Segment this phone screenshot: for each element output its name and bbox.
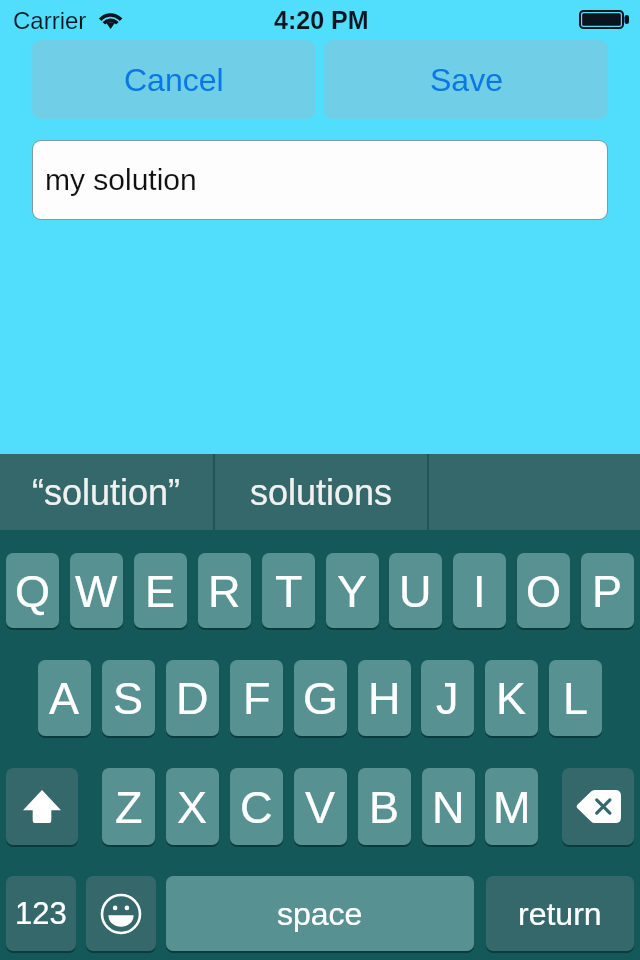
button[interactable]: Y	[326, 553, 379, 628]
staticText: U	[399, 566, 432, 616]
button[interactable]: Cancel	[32, 40, 315, 119]
staticText: W	[75, 566, 118, 616]
button[interactable]: E	[134, 553, 187, 628]
button[interactable]: S	[102, 660, 155, 736]
button[interactable]: W	[70, 553, 123, 628]
button[interactable]: L	[549, 660, 602, 736]
staticText: my solution	[45, 163, 197, 197]
staticText: H	[368, 673, 401, 723]
staticText: B	[369, 782, 400, 832]
staticText: E	[145, 566, 176, 616]
staticText: A	[49, 673, 80, 723]
staticText: V	[305, 782, 336, 832]
button[interactable]: N	[422, 768, 475, 845]
button[interactable]: A	[38, 660, 91, 736]
button[interactable]: H	[358, 660, 411, 736]
staticText: M	[493, 782, 531, 832]
button[interactable]: O	[517, 553, 570, 628]
staticText: G	[303, 673, 339, 723]
staticText: P	[592, 566, 623, 616]
staticText: K	[496, 673, 527, 723]
button[interactable]: J	[421, 660, 474, 736]
staticText: O	[526, 566, 562, 616]
staticText: Save	[430, 62, 503, 98]
staticText: Carrier	[13, 7, 87, 34]
button[interactable]: F	[230, 660, 283, 736]
staticText: Z	[115, 782, 143, 832]
button[interactable]: solutions	[215, 454, 427, 530]
button[interactable]: X	[166, 768, 219, 845]
staticText: D	[176, 673, 209, 723]
button[interactable]: Z	[102, 768, 155, 845]
staticText: return	[518, 896, 602, 932]
button[interactable]: “solution”	[0, 454, 213, 530]
staticText: Q	[15, 566, 51, 616]
staticText: I	[473, 566, 486, 616]
button[interactable]: M	[485, 768, 538, 845]
staticText: X	[177, 782, 208, 832]
staticText: “solution”	[32, 472, 181, 512]
button[interactable]: Save	[324, 40, 608, 119]
button[interactable]: R	[198, 553, 251, 628]
staticText: L	[563, 673, 589, 723]
button[interactable]: 123	[6, 876, 76, 951]
button[interactable]: G	[294, 660, 347, 736]
button[interactable]: C	[230, 768, 283, 845]
button[interactable]: V	[294, 768, 347, 845]
staticText: Cancel	[124, 62, 224, 98]
staticText: space	[277, 896, 363, 932]
button[interactable]: Backspace	[562, 768, 634, 845]
button[interactable]: I	[453, 553, 506, 628]
staticText: 123	[15, 896, 67, 931]
staticText: solutions	[250, 472, 393, 512]
staticText: T	[275, 566, 303, 616]
staticText: R	[208, 566, 241, 616]
button[interactable]: U	[389, 553, 442, 628]
button[interactable]: P	[581, 553, 634, 628]
button[interactable]: space	[166, 876, 474, 951]
button[interactable]: T	[262, 553, 315, 628]
button[interactable]: my solution	[33, 141, 607, 219]
staticText: Y	[337, 566, 368, 616]
button[interactable]: return	[486, 876, 634, 951]
staticText: S	[113, 673, 144, 723]
staticText: F	[243, 673, 271, 723]
staticText: N	[432, 782, 465, 832]
staticText: C	[240, 782, 273, 832]
staticText: 4:20 PM	[274, 6, 369, 34]
staticText: J	[436, 673, 459, 723]
button[interactable]: B	[358, 768, 411, 845]
button[interactable]: Shift	[6, 768, 78, 845]
button[interactable]: Q	[6, 553, 59, 628]
button[interactable]: K	[485, 660, 538, 736]
button[interactable]: Emoji	[86, 876, 156, 951]
button[interactable]: D	[166, 660, 219, 736]
